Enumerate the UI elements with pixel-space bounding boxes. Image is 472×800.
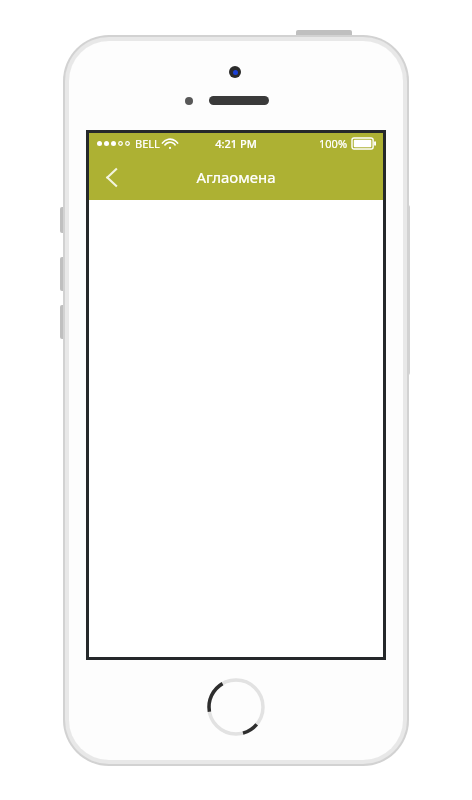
staticText: 100% bbox=[319, 136, 348, 151]
staticText: BELL bbox=[135, 136, 160, 151]
staticText: Аглаомена bbox=[196, 167, 276, 187]
staticText: 4:21 PM bbox=[215, 136, 257, 151]
button[interactable]: Back bbox=[89, 155, 133, 199]
button[interactable]: Home bbox=[207, 678, 265, 736]
